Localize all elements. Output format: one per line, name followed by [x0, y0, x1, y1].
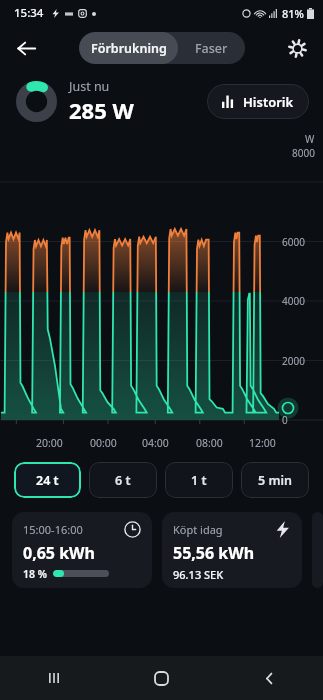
- button[interactable]: 15:00-16:00: [12, 512, 152, 588]
- button[interactable]: Back: [8, 30, 44, 66]
- staticText: 8000: [292, 146, 315, 158]
- button[interactable]: Back: [215, 656, 323, 700]
- staticText: 15:34: [14, 5, 44, 21]
- staticText: 12:00: [249, 436, 276, 450]
- staticText: 15:00-16:00: [23, 522, 83, 537]
- staticText: Historik: [243, 93, 294, 111]
- staticText: 4000: [282, 294, 305, 308]
- button[interactable]: Settings: [279, 30, 315, 66]
- staticText: 04:00: [142, 436, 169, 450]
- button[interactable]: Historik: [207, 84, 309, 119]
- staticText: Just nu: [69, 78, 110, 95]
- staticText: 5 min: [258, 472, 292, 489]
- staticText: 6000: [282, 235, 305, 249]
- staticText: 08:00: [196, 436, 223, 450]
- button[interactable]: 5 min: [241, 462, 309, 498]
- staticText: Förbrukning: [91, 40, 167, 57]
- staticText: 55,56 kWh: [173, 542, 255, 564]
- button[interactable]: 1 t: [165, 462, 233, 498]
- staticText: W: [305, 132, 315, 146]
- staticText: 285 W: [69, 95, 134, 125]
- staticText: 00:00: [90, 436, 117, 450]
- staticText: 20:00: [36, 436, 63, 450]
- staticText: 18 %: [23, 567, 47, 579]
- button[interactable]: 6 t: [89, 462, 157, 498]
- staticText: Köpt idag: [173, 522, 223, 537]
- button[interactable]: Köpt idag: [162, 512, 302, 588]
- staticText: 81%: [282, 6, 304, 21]
- staticText: 1 t: [191, 472, 207, 489]
- button[interactable]: Recent apps: [0, 656, 107, 700]
- button[interactable]: Faser: [178, 32, 245, 64]
- staticText: 6 t: [115, 472, 131, 489]
- staticText: 0: [282, 413, 288, 427]
- button[interactable]: 24 t: [14, 462, 81, 498]
- staticText: 96,13 SEK: [173, 567, 224, 579]
- staticText: Faser: [195, 40, 228, 57]
- button[interactable]: Home: [107, 656, 215, 700]
- button[interactable]: Förbrukning: [79, 32, 178, 64]
- staticText: 2000: [282, 354, 305, 368]
- staticText: 0,65 kWh: [23, 542, 95, 564]
- staticText: 24 t: [36, 472, 59, 489]
